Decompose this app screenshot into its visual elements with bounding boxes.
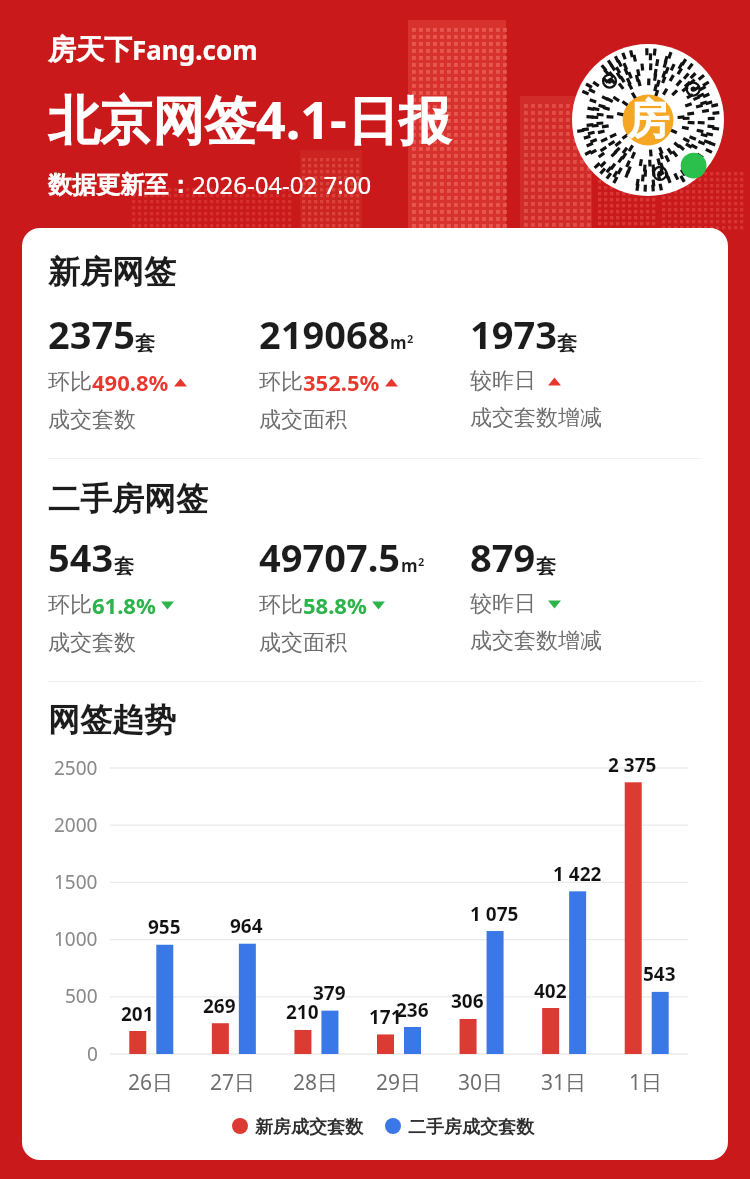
staticText: 2000 — [54, 812, 98, 838]
staticText: 二手房成交套数 — [408, 1116, 534, 1139]
staticText: Fang.com — [132, 32, 258, 67]
staticText: 26日 — [128, 1068, 174, 1097]
staticText: 61.8% — [92, 590, 156, 620]
staticText: 29日 — [376, 1068, 422, 1097]
staticText: 490.8% — [92, 367, 169, 397]
button[interactable]: 小程序码 — [572, 44, 724, 196]
staticText: 28日 — [293, 1068, 339, 1097]
staticText: 0 — [87, 1041, 98, 1067]
staticText: 269 — [203, 993, 236, 1019]
staticText: 套 — [114, 554, 134, 579]
button[interactable]: 543 — [48, 531, 259, 657]
staticText: 30日 — [458, 1068, 504, 1097]
staticText: 58.8% — [303, 590, 367, 620]
staticText: 171 — [369, 1004, 402, 1030]
staticText: 较昨日 — [470, 590, 536, 618]
staticText: 201 — [121, 1001, 154, 1027]
staticText: 套 — [536, 554, 556, 579]
staticText: 210 — [286, 999, 319, 1025]
button[interactable]: 房天下 — [48, 32, 258, 67]
staticText: 成交套数增减 — [470, 627, 602, 655]
staticText: 成交套数增减 — [470, 404, 602, 432]
staticText: 1 075 — [470, 901, 519, 927]
staticText: 房天下 — [48, 32, 132, 67]
staticText: 北京网签4.1-日报 — [48, 83, 451, 154]
button[interactable]: 879 — [470, 531, 702, 655]
staticText: 2026-04-02 7:00 — [192, 168, 372, 201]
staticText: 成交套数 — [48, 406, 136, 434]
staticText: 31日 — [541, 1068, 587, 1097]
staticText: 网签趋势 — [48, 700, 176, 740]
staticText: 49707.5 — [259, 531, 401, 583]
staticText: m — [390, 331, 407, 354]
staticText: 1500 — [54, 869, 98, 895]
staticText: 2 375 — [608, 752, 657, 778]
staticText: 环比 — [259, 591, 303, 619]
staticText: 1 422 — [553, 861, 602, 887]
staticText: 219068 — [259, 308, 390, 360]
staticText: 379 — [313, 980, 346, 1006]
staticText: 306 — [451, 988, 484, 1014]
staticText: 房 — [627, 94, 669, 147]
staticText: 较昨日 — [470, 367, 536, 395]
staticText: 成交套数 — [48, 629, 136, 657]
button[interactable]: 1973 — [470, 308, 702, 432]
staticText: 二手房网签 — [48, 479, 208, 519]
staticText: 环比 — [48, 368, 92, 396]
staticText: 1日 — [629, 1068, 663, 1097]
staticText: 环比 — [48, 591, 92, 619]
staticText: 套 — [557, 331, 577, 356]
button[interactable]: 2375 — [48, 308, 259, 434]
staticText: 套 — [135, 331, 155, 356]
staticText: 352.5% — [303, 367, 380, 397]
staticText: 2 — [407, 331, 414, 346]
button[interactable]: 49707.5 — [259, 531, 470, 657]
staticText: 2375 — [48, 308, 135, 360]
button[interactable]: 219068 — [259, 308, 470, 434]
staticText: 新房网签 — [48, 252, 176, 292]
staticText: 环比 — [259, 368, 303, 396]
staticText: 2500 — [54, 755, 98, 781]
staticText: 543 — [643, 961, 676, 987]
staticText: m — [401, 554, 418, 577]
staticText: 1000 — [54, 926, 98, 952]
staticText: 964 — [230, 913, 263, 939]
staticText: 成交面积 — [259, 406, 347, 434]
staticText: 879 — [470, 531, 536, 583]
staticText: 500 — [65, 983, 98, 1009]
staticText: 2 — [418, 554, 425, 569]
staticText: 新房成交套数 — [255, 1116, 363, 1139]
staticText: 成交面积 — [259, 629, 347, 657]
staticText: 1973 — [470, 308, 557, 360]
staticText: 236 — [396, 997, 429, 1023]
staticText: 27日 — [210, 1068, 256, 1097]
staticText: 402 — [534, 978, 567, 1004]
staticText: 543 — [48, 531, 114, 583]
staticText: 数据更新至： — [48, 170, 192, 200]
staticText: 955 — [148, 914, 181, 940]
